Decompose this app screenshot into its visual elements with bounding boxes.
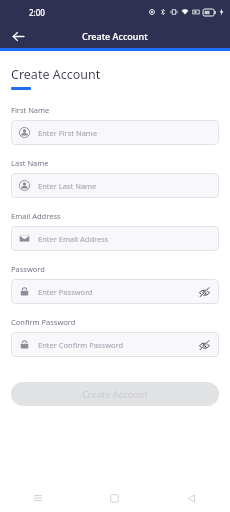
- staticText: Enter Email Address: [38, 234, 211, 244]
- staticText: Create Account: [11, 66, 101, 83]
- button[interactable]: Enter Confirm Password: [11, 332, 219, 357]
- staticText: Enter Last Name: [38, 181, 211, 191]
- button[interactable]: Back: [153, 484, 230, 512]
- button[interactable]: Show password: [197, 285, 211, 299]
- button[interactable]: Enter Last Name: [11, 173, 219, 198]
- button[interactable]: Enter First Name: [11, 120, 219, 145]
- staticText: Create Account: [82, 388, 148, 400]
- staticText: Enter Password: [38, 287, 197, 297]
- button[interactable]: Back: [8, 26, 28, 46]
- button[interactable]: Create Account: [11, 382, 219, 406]
- staticText: Enter First Name: [38, 128, 211, 138]
- staticText: Email Address: [11, 211, 61, 221]
- staticText: Password: [11, 264, 45, 274]
- staticText: Create Account: [82, 30, 148, 42]
- button[interactable]: Home: [76, 484, 153, 512]
- button[interactable]: Enter Email Address: [11, 226, 219, 251]
- staticText: Last Name: [11, 158, 49, 168]
- staticText: Enter Confirm Password: [38, 340, 197, 350]
- staticText: First Name: [11, 105, 50, 115]
- button[interactable]: Enter Password: [11, 279, 219, 304]
- button[interactable]: Show password: [197, 338, 211, 352]
- button[interactable]: Recent apps: [0, 484, 76, 512]
- staticText: Confirm Password: [11, 317, 76, 327]
- staticText: 2:00: [29, 7, 45, 18]
